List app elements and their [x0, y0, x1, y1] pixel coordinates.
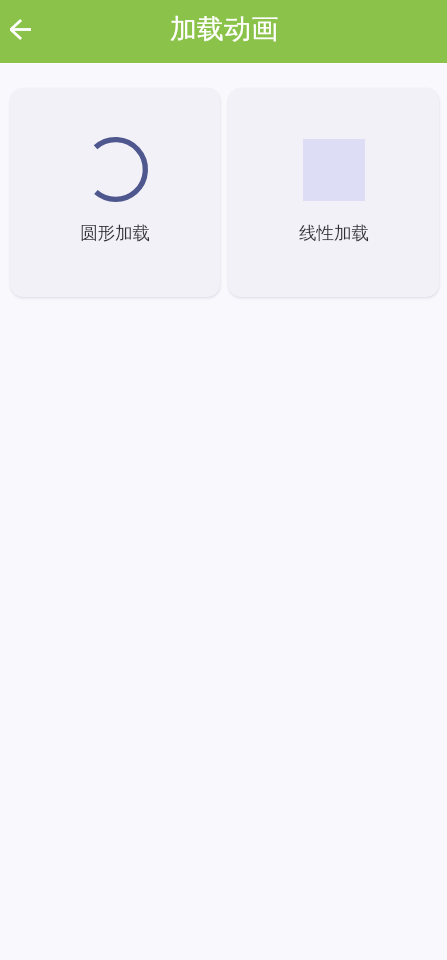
staticText: 线性加载 — [299, 222, 369, 244]
staticText: 圆形加载 — [80, 222, 150, 244]
button[interactable]: Back — [4, 13, 36, 45]
button[interactable]: 线性加载 — [228, 88, 439, 297]
staticText: 加载动画 — [170, 12, 278, 46]
button[interactable]: 圆形加载 — [10, 88, 220, 297]
